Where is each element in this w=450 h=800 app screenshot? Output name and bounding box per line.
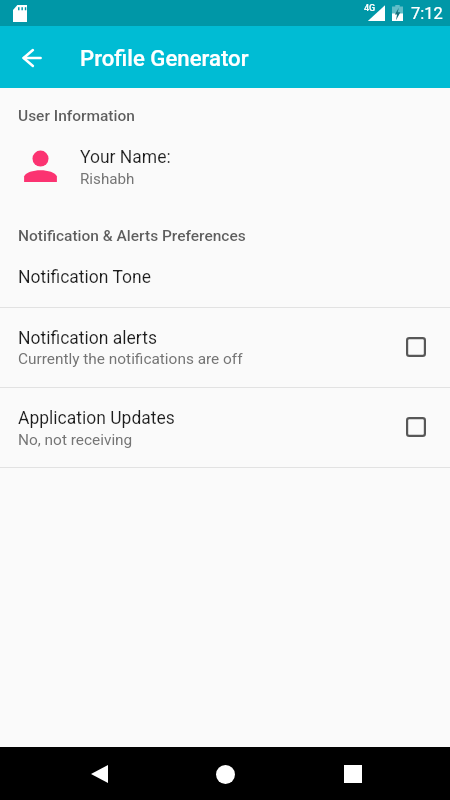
other: Mobile signal 4G [363,4,385,22]
other: User avatar [24,143,57,183]
button[interactable]: User avatar [0,132,450,194]
button[interactable]: Application Updates [0,388,450,467]
staticText: Your Name: [80,147,171,168]
button[interactable]: Navigate up [12,38,52,78]
staticText: Rishabh [80,170,135,188]
staticText: Notification Tone [18,267,151,288]
button[interactable]: Back [75,750,123,798]
staticText: Notification alerts [18,328,157,349]
button[interactable]: Toggle notification alerts [392,323,440,371]
button[interactable]: Home [201,750,249,798]
other: Battery charging [392,5,403,21]
staticText: Profile Generator [80,45,249,71]
button[interactable]: Notification alerts [0,308,450,387]
staticText: Notification & Alerts Preferences [18,227,246,245]
button[interactable]: Recent apps [329,750,377,798]
staticText: 4G [364,3,376,14]
staticText: Application Updates [18,408,175,429]
other: SD card [13,5,27,22]
staticText: User Information [18,107,135,125]
staticText: Currently the notifications are off [18,350,243,368]
button[interactable]: Toggle application updates [392,403,440,451]
staticText: No, not receiving [18,431,133,449]
staticText: 7:12 [411,4,443,23]
button[interactable]: Notification Tone [0,253,450,307]
